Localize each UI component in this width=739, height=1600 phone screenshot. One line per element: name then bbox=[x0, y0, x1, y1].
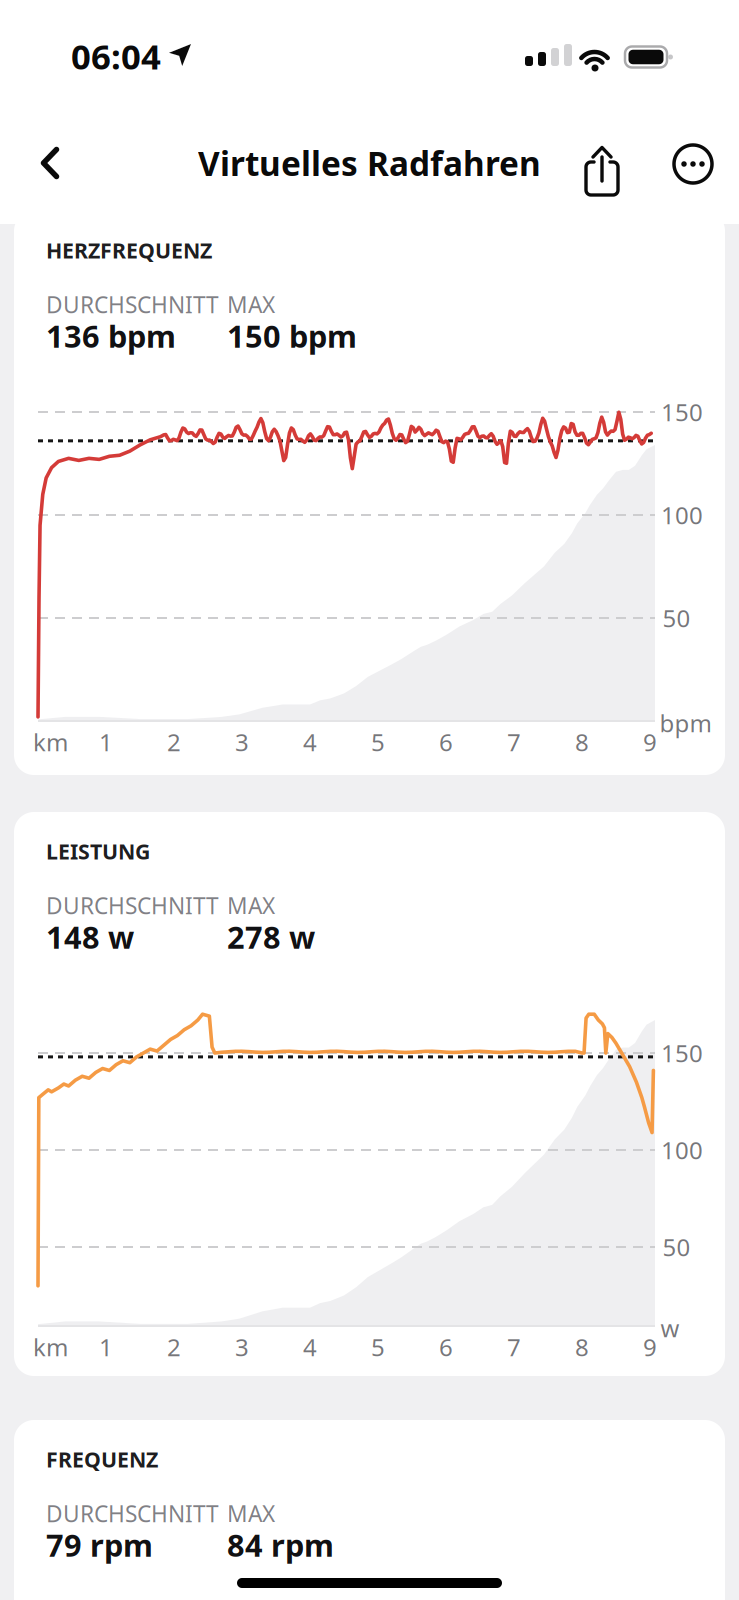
staticText: 4 bbox=[303, 726, 317, 758]
staticText: 148 w bbox=[46, 916, 134, 957]
staticText: FREQUENZ bbox=[46, 1445, 158, 1473]
staticText: 136 bpm bbox=[46, 315, 176, 356]
staticText: 278 w bbox=[227, 916, 315, 957]
staticText: 100 bbox=[661, 499, 703, 531]
staticText: 50 bbox=[662, 1231, 690, 1263]
staticText: 5 bbox=[371, 1331, 385, 1363]
staticText: 50 bbox=[662, 602, 690, 634]
staticText: 5 bbox=[371, 726, 385, 758]
staticText: 6 bbox=[439, 1331, 453, 1363]
staticText: 3 bbox=[235, 1331, 249, 1363]
staticText: 2 bbox=[167, 726, 181, 758]
staticText: km bbox=[33, 1331, 68, 1363]
staticText: 9 bbox=[643, 726, 657, 758]
staticText: 1 bbox=[99, 726, 113, 758]
staticText: 9 bbox=[643, 1331, 657, 1363]
staticText: MAX bbox=[227, 890, 275, 920]
staticText: bpm bbox=[659, 707, 711, 739]
staticText: DURCHSCHNITT bbox=[46, 1498, 219, 1528]
staticText: DURCHSCHNITT bbox=[46, 890, 219, 920]
button[interactable]: Share bbox=[578, 135, 626, 199]
staticText: 150 bpm bbox=[227, 315, 357, 356]
staticText: 6 bbox=[439, 726, 453, 758]
staticText: 79 rpm bbox=[46, 1524, 153, 1565]
staticText: w bbox=[660, 1312, 679, 1344]
staticText: 4 bbox=[303, 1331, 317, 1363]
staticText: km bbox=[33, 726, 68, 758]
staticText: LEISTUNG bbox=[46, 837, 150, 865]
staticText: HERZFREQUENZ bbox=[46, 236, 212, 264]
staticText: 8 bbox=[575, 1331, 589, 1363]
staticText: 06:04 bbox=[71, 33, 161, 79]
staticText: MAX bbox=[227, 1498, 275, 1528]
staticText: MAX bbox=[227, 289, 275, 319]
staticText: 3 bbox=[235, 726, 249, 758]
staticText: 2 bbox=[167, 1331, 181, 1363]
staticText: 7 bbox=[507, 1331, 521, 1363]
staticText: 150 bbox=[661, 396, 703, 428]
staticText: 8 bbox=[575, 726, 589, 758]
staticText: 1 bbox=[99, 1331, 113, 1363]
staticText: 7 bbox=[507, 726, 521, 758]
staticText: 84 rpm bbox=[227, 1524, 334, 1565]
staticText: Virtuelles Radfahren bbox=[198, 141, 541, 185]
staticText: DURCHSCHNITT bbox=[46, 289, 219, 319]
staticText: 100 bbox=[661, 1134, 703, 1166]
button[interactable]: More options bbox=[672, 143, 714, 185]
staticText: 150 bbox=[661, 1037, 703, 1069]
button[interactable]: Back bbox=[28, 135, 71, 190]
